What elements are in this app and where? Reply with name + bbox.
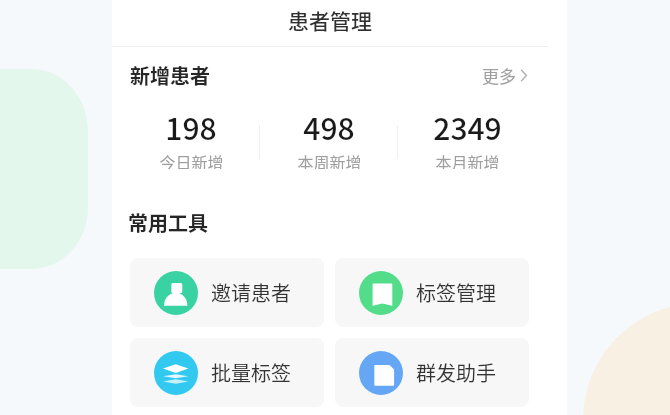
button[interactable]: 198 [122,105,260,169]
staticText: 常用工具 [128,208,208,237]
button[interactable]: 邀请患者 [130,258,324,327]
button[interactable]: 批量标签 [130,338,324,407]
staticText: 本周新增 [297,150,362,169]
button[interactable]: 群发助手 [335,338,529,407]
staticText: 邀请患者 [211,278,291,307]
staticText: 今日新增 [159,150,224,169]
staticText: 群发助手 [416,358,496,387]
button[interactable]: 498 [260,105,398,169]
staticText: 498 [303,105,355,148]
staticText: 2349 [433,105,502,148]
staticText: 198 [165,105,217,148]
button[interactable]: 更多 [482,60,538,90]
button[interactable]: 标签管理 [335,258,529,327]
staticText: 更多 [482,63,516,88]
staticText: 标签管理 [416,278,496,307]
staticText: 本月新增 [435,150,500,169]
button[interactable]: 2349 [398,105,536,169]
staticText: 批量标签 [211,358,291,387]
staticText: 患者管理 [288,5,372,35]
staticText: 新增患者 [130,61,210,90]
